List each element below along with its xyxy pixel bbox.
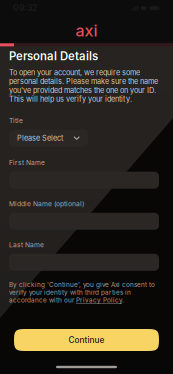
staticText: Continue bbox=[68, 335, 104, 345]
staticText: First Name bbox=[9, 159, 45, 167]
staticText: By clicking 'Continue', you give Axi con… bbox=[9, 281, 155, 304]
button[interactable]: Please Select bbox=[9, 130, 88, 147]
staticText: To open your account, we require some pe… bbox=[9, 68, 158, 104]
staticText: Last Name bbox=[9, 241, 44, 249]
staticText: Title bbox=[9, 117, 23, 125]
staticText: Please Select bbox=[17, 134, 63, 143]
staticText: Personal Details bbox=[9, 49, 98, 63]
staticText: Middle Name (optional) bbox=[9, 200, 84, 208]
staticText: axi bbox=[75, 21, 97, 40]
button[interactable]: Continue bbox=[14, 329, 159, 351]
staticText: 09:32 bbox=[13, 3, 37, 13]
